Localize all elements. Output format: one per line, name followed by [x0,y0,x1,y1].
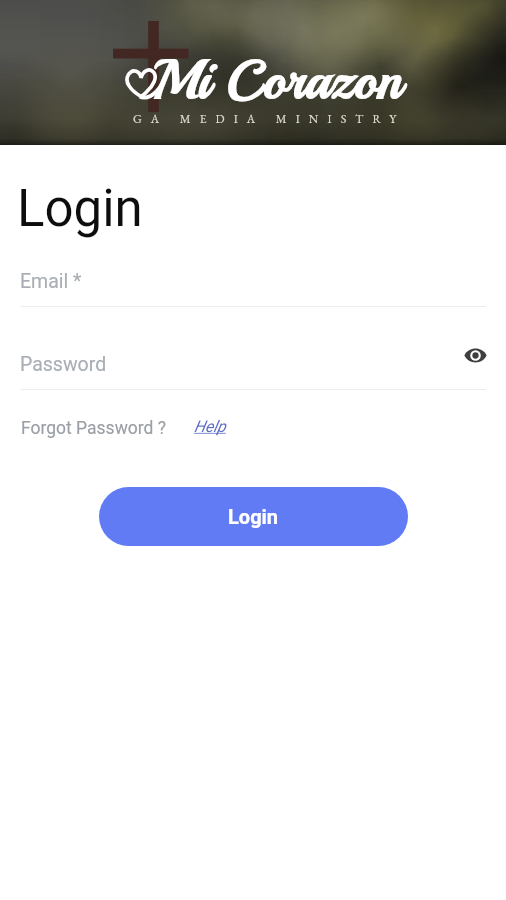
staticText: Mi Corazon [153,47,402,115]
staticText: GA MEDIA MINISTRY [133,111,406,127]
staticText: Help [194,417,226,436]
staticText: Login [228,505,279,528]
staticText: Email * [20,270,82,293]
button[interactable]: Help [194,417,226,436]
button[interactable]: Password [21,353,486,389]
button[interactable]: Email * [21,270,486,307]
staticText: Forgot Password ? [21,418,167,439]
staticText: Login [17,179,143,239]
staticText: Password [20,353,107,376]
staticText: Mi Corazon [153,47,402,115]
button[interactable]: Login [99,487,408,546]
button[interactable]: Forgot Password ? [21,418,167,439]
button[interactable]: Show password [460,340,490,370]
